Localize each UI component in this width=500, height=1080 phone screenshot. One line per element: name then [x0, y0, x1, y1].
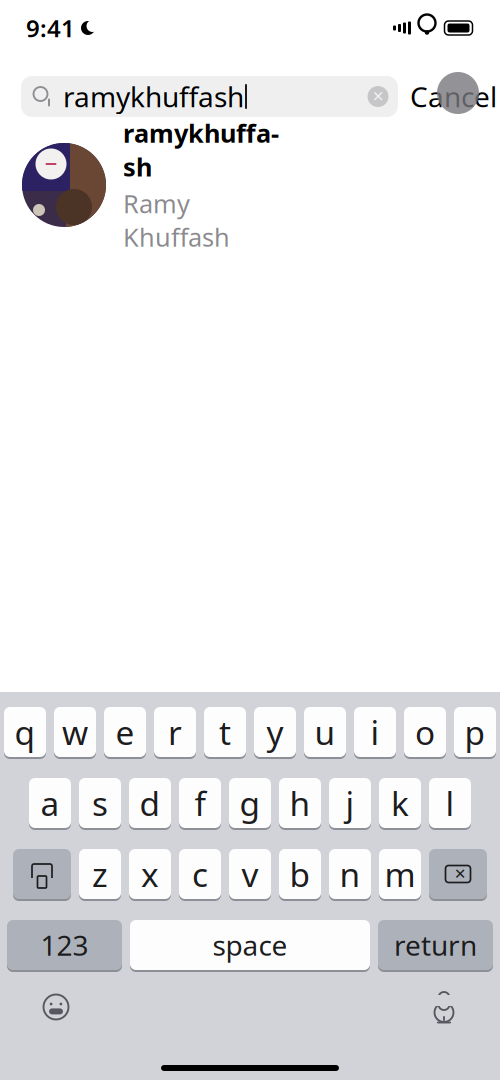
button[interactable]: o — [404, 707, 446, 759]
staticText: 9:41 — [26, 12, 75, 44]
staticText: ✕ — [454, 866, 466, 882]
button[interactable]: f — [179, 778, 221, 830]
staticText: z — [92, 852, 108, 896]
button[interactable]: Clear text — [364, 82, 392, 110]
staticText: s — [92, 781, 108, 825]
button[interactable]: r — [154, 707, 196, 759]
staticText: Ramy Khuffash — [123, 186, 230, 254]
button[interactable]: q — [4, 707, 46, 759]
staticText: b — [289, 852, 310, 896]
button[interactable]: return — [378, 920, 493, 972]
button[interactable]: Shift — [13, 849, 71, 901]
staticText: v — [241, 852, 258, 896]
staticText: t — [219, 710, 231, 754]
staticText: q — [14, 710, 35, 754]
staticText: 123 — [40, 926, 88, 964]
button[interactable]: p — [454, 707, 496, 759]
staticText: y — [266, 710, 283, 754]
button[interactable]: z — [79, 849, 121, 901]
button[interactable]: x — [129, 849, 171, 901]
button[interactable]: i — [354, 707, 396, 759]
button[interactable]: space — [130, 920, 370, 972]
staticText: c — [192, 852, 208, 896]
button[interactable]: t — [204, 707, 246, 759]
staticText: g — [239, 781, 260, 825]
button[interactable]: Emoji — [33, 984, 79, 1030]
staticText: ramykhuffash — [63, 78, 244, 115]
staticText: m — [384, 852, 415, 896]
staticText: return — [394, 926, 477, 964]
button[interactable]: l — [429, 778, 471, 830]
button[interactable]: a — [29, 778, 71, 830]
staticText: i — [370, 710, 379, 754]
button[interactable]: m — [379, 849, 421, 901]
staticText: x — [141, 852, 159, 896]
button[interactable]: w — [54, 707, 96, 759]
button[interactable]: u — [304, 707, 346, 759]
button[interactable]: h — [279, 778, 321, 830]
staticText: f — [194, 781, 205, 825]
staticText: w — [62, 710, 88, 754]
button[interactable]: s — [79, 778, 121, 830]
button[interactable]: b — [279, 849, 321, 901]
staticText: r — [168, 710, 182, 754]
staticText: a — [40, 781, 59, 825]
staticText: Cancel — [410, 78, 497, 115]
staticText: d — [139, 781, 160, 825]
button[interactable]: j — [329, 778, 371, 830]
button[interactable]: d — [129, 778, 171, 830]
button[interactable]: e — [104, 707, 146, 759]
button[interactable]: Dictation — [421, 984, 467, 1030]
staticText: l — [445, 781, 454, 825]
staticText: h — [289, 781, 310, 825]
button[interactable]: c — [179, 849, 221, 901]
button[interactable]: Delete — [429, 849, 487, 901]
staticText: u — [314, 710, 335, 754]
button[interactable]: g — [229, 778, 271, 830]
button[interactable]: Cancel — [410, 76, 497, 117]
staticText: j — [345, 781, 354, 825]
button[interactable]: 123 — [7, 920, 122, 972]
button[interactable]: y — [254, 707, 296, 759]
staticText: p — [464, 710, 485, 754]
staticText: e — [115, 710, 134, 754]
button[interactable]: ramykhuffash — [0, 137, 500, 233]
staticText: space — [212, 926, 287, 964]
staticText: o — [415, 710, 435, 754]
staticText: n — [339, 852, 360, 896]
staticText: ✕ — [372, 88, 384, 105]
button[interactable]: v — [229, 849, 271, 901]
button[interactable]: n — [329, 849, 371, 901]
button[interactable]: k — [379, 778, 421, 830]
staticText: ramykhuffash — [123, 116, 279, 183]
staticText: k — [391, 781, 409, 825]
